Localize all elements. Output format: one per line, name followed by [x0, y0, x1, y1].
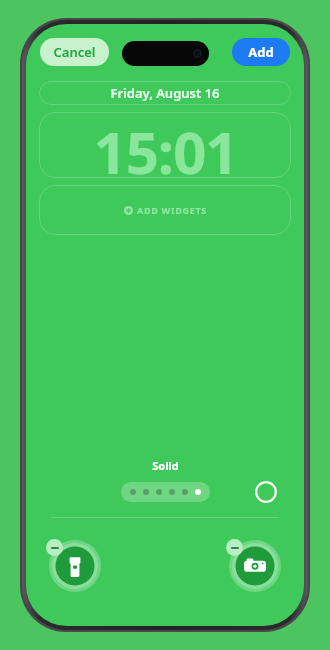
button[interactable]: Choose colour: [254, 481, 278, 503]
staticText: 15:01: [93, 112, 238, 178]
staticText: Cancel: [53, 43, 96, 61]
staticText: ADD WIDGETS: [137, 204, 207, 216]
button[interactable]: Flashlight: [49, 540, 101, 592]
staticText: Friday, August 16: [110, 84, 220, 102]
button[interactable]: Remove Camera: [226, 539, 243, 556]
button[interactable]: [121, 482, 210, 502]
button[interactable]: ADD WIDGETS: [39, 185, 291, 235]
button[interactable]: Friday, August 16: [39, 81, 291, 105]
staticText: Add: [248, 43, 274, 61]
button[interactable]: 15:01: [39, 112, 291, 178]
button[interactable]: Add: [232, 38, 290, 66]
staticText: Solid: [152, 458, 179, 473]
button[interactable]: Remove Flashlight: [46, 539, 63, 556]
button[interactable]: Camera: [229, 540, 281, 592]
button[interactable]: Cancel: [40, 38, 109, 66]
